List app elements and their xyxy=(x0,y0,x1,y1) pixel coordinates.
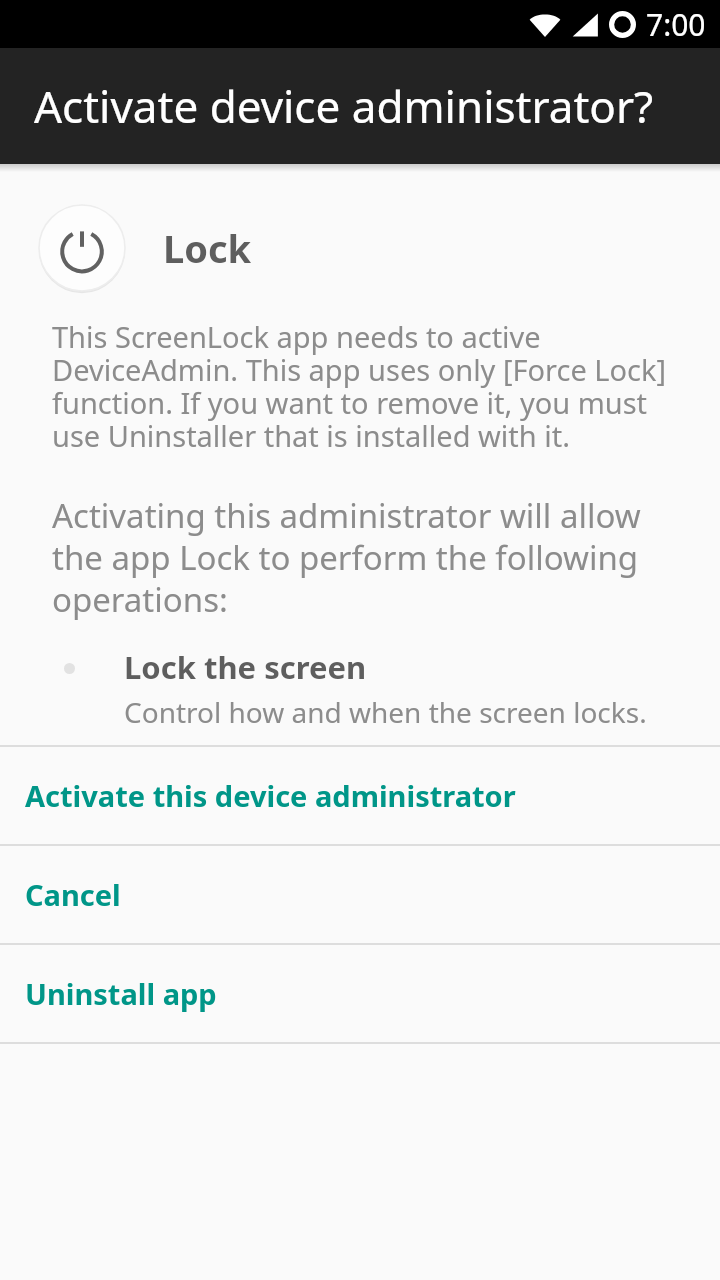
staticText: Lock the screen xyxy=(124,646,367,688)
button[interactable]: Uninstall app xyxy=(0,945,720,1042)
staticText: Activating this administrator will allow… xyxy=(52,493,682,622)
staticText: Activate this device administrator xyxy=(25,776,516,815)
staticText: This ScreenLock app needs to active Devi… xyxy=(52,317,682,455)
staticText: Lock xyxy=(163,222,252,274)
staticText: Control how and when the screen locks. xyxy=(124,693,647,731)
staticText: Uninstall app xyxy=(25,974,217,1013)
button[interactable]: Activate this device administrator xyxy=(0,747,720,844)
staticText: Cancel xyxy=(25,875,121,914)
staticText: 7:00 xyxy=(646,4,706,45)
button[interactable]: Cancel xyxy=(0,846,720,943)
staticText: Activate device administrator? xyxy=(34,76,654,136)
